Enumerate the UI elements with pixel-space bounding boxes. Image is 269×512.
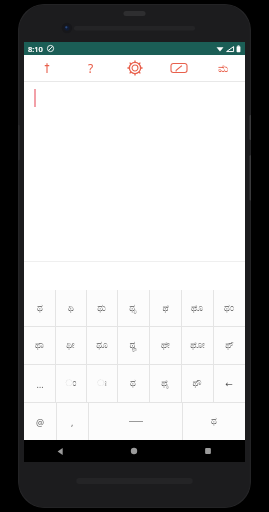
staticText: ಥು — [97, 304, 106, 313]
button[interactable]: Help — [69, 55, 113, 81]
staticText: ಃ — [97, 379, 107, 388]
staticText: ಥ — [130, 379, 136, 388]
button[interactable]: ಥ್ — [213, 327, 245, 364]
staticText: @ — [36, 416, 45, 428]
staticText: ಥೆ — [162, 304, 169, 313]
staticText: ಥೊ — [191, 304, 203, 313]
button[interactable]: ಥೇ — [149, 327, 181, 364]
button[interactable]: ಥ — [183, 403, 245, 440]
button[interactable]: Dagger — [24, 55, 69, 81]
button[interactable]: ಃ — [86, 365, 117, 402]
button[interactable]: ಂ — [55, 365, 86, 402]
staticText: ಥೄ — [129, 341, 137, 350]
button[interactable]: Recent apps — [171, 440, 245, 462]
staticText: ಥೌ — [192, 379, 202, 388]
staticText: ಥೇ — [161, 341, 170, 350]
button[interactable]: ಥೆ — [149, 290, 181, 326]
button[interactable] — [24, 82, 245, 262]
button[interactable]: ಥೃ — [117, 290, 149, 326]
button[interactable]: ಥೌ — [181, 365, 213, 402]
button[interactable]: ಥಿ — [55, 290, 86, 326]
button[interactable]: , — [57, 403, 88, 440]
button[interactable]: ಥಂ — [213, 290, 245, 326]
button[interactable]: ಥ — [24, 290, 55, 326]
staticText: ಥ — [37, 304, 43, 313]
staticText: ಥ — [211, 417, 217, 426]
button[interactable]: ಥೋ — [181, 327, 213, 364]
staticText: ಂ — [65, 379, 77, 388]
button[interactable]: ಥ — [117, 365, 149, 402]
staticText: ಥಿ — [68, 304, 74, 313]
button[interactable]: ಥೂ — [86, 327, 117, 364]
staticText: ಥಾ — [35, 341, 44, 350]
staticText: ಥೂ — [96, 341, 108, 350]
button[interactable]: … — [24, 365, 55, 402]
staticText: … — [36, 378, 44, 390]
staticText: ಥೋ — [190, 341, 205, 350]
staticText: ಥಂ — [224, 304, 234, 313]
button[interactable]: Back — [24, 440, 97, 462]
staticText: ಥೈ — [161, 379, 169, 388]
staticText: ಥೀ — [66, 341, 75, 350]
staticText: 8:10 — [28, 44, 43, 54]
button[interactable]: ಥು — [86, 290, 117, 326]
staticText: ← — [225, 379, 233, 389]
button[interactable]: Settings — [113, 55, 157, 81]
button[interactable]: Space — [89, 403, 182, 440]
button[interactable]: @ — [24, 403, 56, 440]
button[interactable]: Kannada — [201, 55, 245, 81]
staticText: ಮೆ — [218, 63, 229, 74]
button[interactable]: Home — [97, 440, 171, 462]
button[interactable]: ← — [213, 365, 245, 402]
staticText: ಥೃ — [129, 304, 137, 313]
button[interactable]: ಥೀ — [55, 327, 86, 364]
button[interactable]: ಥೄ — [117, 327, 149, 364]
staticText: ? — [88, 60, 94, 76]
button[interactable]: ಥೈ — [149, 365, 181, 402]
staticText: ಥ್ — [225, 341, 234, 350]
button[interactable]: ಥೊ — [181, 290, 213, 326]
button[interactable]: Edit — [157, 55, 201, 81]
button[interactable]: ಥಾ — [24, 327, 55, 364]
staticText: , — [71, 416, 74, 428]
